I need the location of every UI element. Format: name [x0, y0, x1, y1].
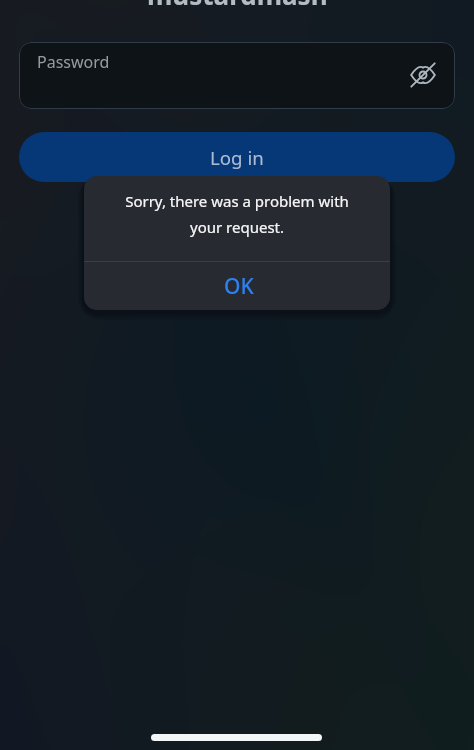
button[interactable]: Password	[19, 42, 455, 109]
staticText: OK	[224, 272, 254, 301]
staticText: mustardmash	[147, 0, 328, 12]
staticText: Sorry, there was a problem with your req…	[125, 191, 349, 238]
staticText: Log in	[210, 145, 264, 170]
staticText: Password	[37, 51, 110, 73]
button[interactable]: Log in	[19, 132, 455, 182]
button[interactable]: OK	[84, 262, 390, 310]
button[interactable]: Show password	[407, 59, 439, 91]
